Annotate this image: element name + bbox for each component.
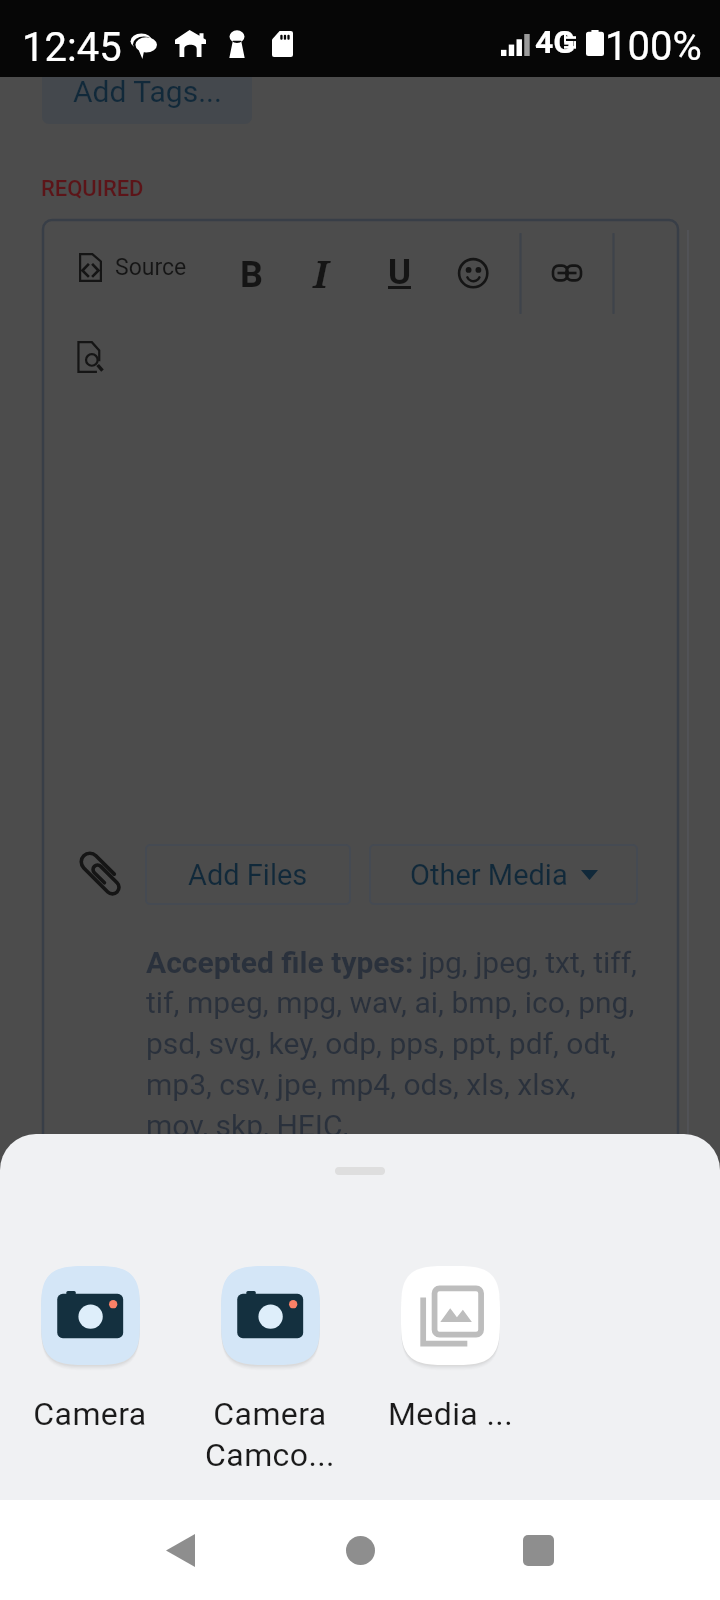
staticText: REQUIRED (41, 176, 144, 202)
staticText: Camera (33, 1395, 147, 1433)
staticText: 4G (535, 23, 576, 61)
staticText: U (388, 252, 412, 293)
staticText: 100% (605, 23, 702, 70)
button[interactable]: Camera (0, 1266, 180, 1433)
button[interactable]: Add Tags... (42, 58, 252, 124)
staticText: LTE (560, 32, 582, 49)
button[interactable]: Camera Camco... (180, 1266, 360, 1474)
button[interactable]: Media ... (360, 1266, 540, 1433)
staticText: Add Files (188, 858, 308, 892)
button[interactable]: Other Media (369, 844, 638, 905)
staticText: Accepted file types: jpg, jpeg, txt, tif… (146, 945, 641, 1144)
staticText: Other Media (410, 858, 568, 892)
staticText: B (240, 254, 263, 296)
button[interactable]: Home (330, 1520, 390, 1580)
button[interactable]: Recent apps (508, 1520, 568, 1580)
staticText: Add Tags... (73, 74, 222, 109)
button[interactable]: Add Files (145, 844, 351, 905)
staticText: Source (115, 254, 187, 281)
button[interactable]: Back (150, 1520, 210, 1580)
staticText: Media ... (388, 1395, 513, 1433)
staticText: 12:45 (22, 24, 122, 71)
staticText: I (313, 247, 329, 299)
staticText: Camera Camco... (205, 1395, 335, 1474)
